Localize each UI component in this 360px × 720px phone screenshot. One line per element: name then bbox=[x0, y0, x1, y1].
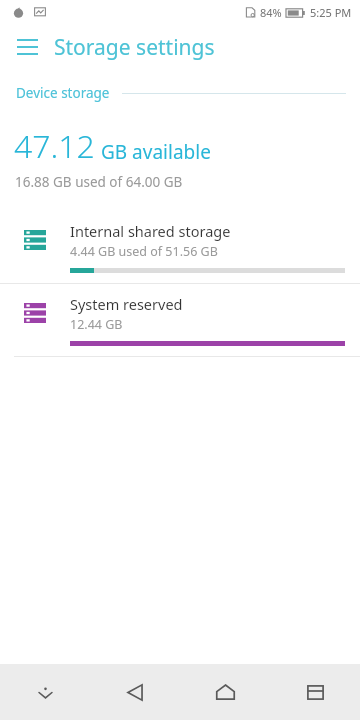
staticText: 84% bbox=[260, 5, 282, 20]
button[interactable]: Home bbox=[180, 664, 270, 720]
staticText: 4.44 GB used of 51.56 GB bbox=[70, 243, 218, 260]
staticText: 47.12 bbox=[14, 124, 95, 168]
button[interactable]: System reserved bbox=[0, 284, 360, 356]
staticText: GB available bbox=[101, 139, 211, 165]
staticText: System reserved bbox=[70, 294, 183, 314]
staticText: 12.44 GB bbox=[70, 316, 123, 333]
button[interactable]: Hide navigation bar bbox=[0, 664, 90, 720]
staticText: Storage settings bbox=[54, 33, 215, 62]
staticText: 5:25 PM bbox=[310, 5, 352, 20]
button[interactable]: Internal shared storage bbox=[0, 211, 360, 283]
button[interactable]: Back bbox=[90, 664, 180, 720]
staticText: Device storage bbox=[16, 84, 110, 102]
button[interactable]: Open navigation menu bbox=[6, 26, 48, 68]
staticText: Internal shared storage bbox=[70, 221, 231, 241]
button[interactable]: Recent apps bbox=[270, 664, 360, 720]
staticText: 16.88 GB used of 64.00 GB bbox=[15, 173, 183, 191]
